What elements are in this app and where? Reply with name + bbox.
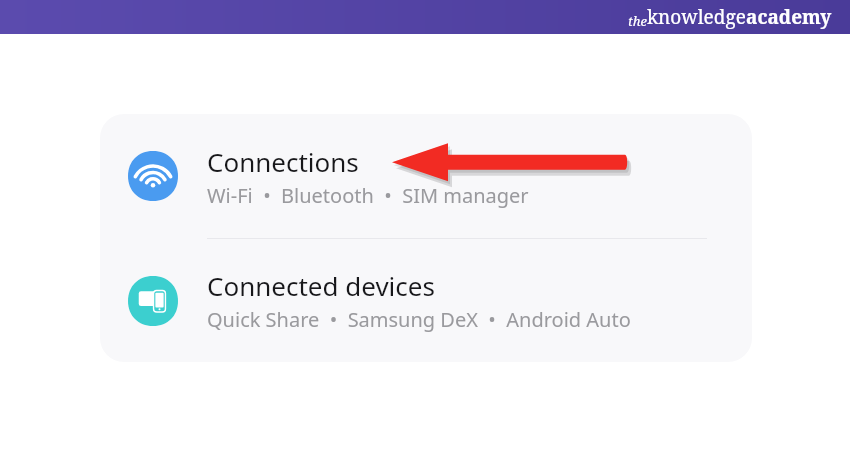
staticText: the [628,12,647,30]
staticText: Connections [207,144,359,179]
other: Arrow pointing to Connections [392,142,628,184]
button[interactable]: Connections [100,114,752,238]
staticText: academy [746,4,832,30]
staticText: knowledge [647,4,746,30]
staticText: Quick Share • Samsung DeX • Android Auto [207,306,631,333]
button[interactable]: the [628,4,832,30]
staticText: Wi-Fi • Bluetooth • SIM manager [207,182,529,209]
button[interactable]: Connected devices [100,239,752,362]
staticText: Connected devices [207,268,435,303]
